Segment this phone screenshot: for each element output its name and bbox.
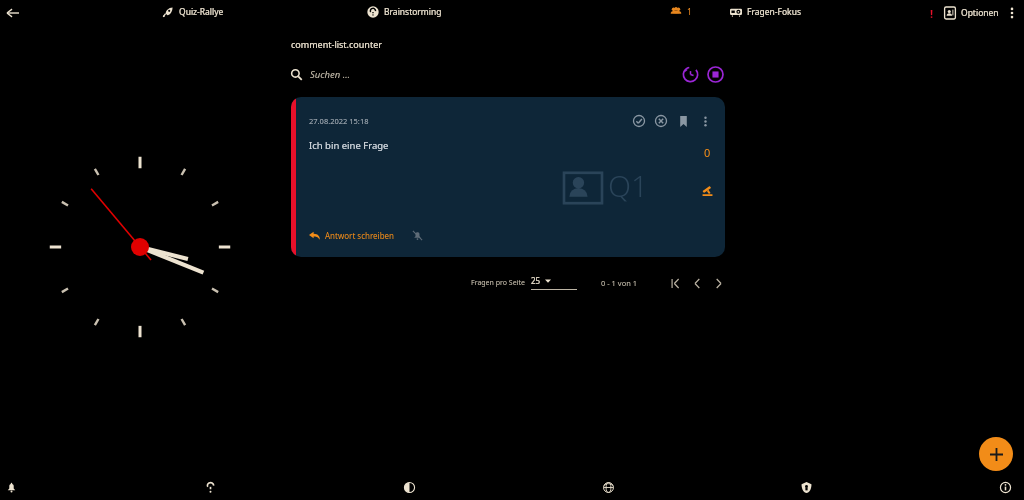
staticText: Suchen … [310,68,351,81]
button[interactable]: Q1 [291,97,725,257]
button[interactable]: Optionen [942,4,1001,22]
button[interactable]: Ablehnen [653,113,669,129]
button[interactable]: Benachrichtigungen [2,478,20,496]
button[interactable]: Erste [668,276,682,290]
staticText: ! [930,6,934,21]
staticText: Q1 [608,165,649,206]
staticText: Antwort schreiben [325,230,395,241]
button[interactable]: Mehr [1005,6,1019,20]
button[interactable]: Mehr [697,113,713,129]
button[interactable]: Datenschutz [797,478,815,496]
button[interactable]: Akzeptieren [631,113,647,129]
button[interactable]: Stopp [705,64,725,84]
button[interactable]: Fragen-Fokus [728,4,803,20]
button[interactable]: Bewerten [699,182,715,198]
button[interactable]: Benachrichtigung aus [409,227,425,243]
staticText: Brainstorming [384,6,442,18]
staticText: Fragen pro Seite [471,278,525,288]
staticText: 0 - 1 von 1 [601,278,638,288]
button[interactable]: Zurück [690,276,704,290]
staticText: Ich bin eine Frage [309,139,389,152]
staticText: Fragen-Fokus [747,6,801,18]
button[interactable]: Lesezeichen [675,113,691,129]
button[interactable]: Weiter [712,276,725,290]
staticText: 25 [531,275,541,286]
button[interactable]: Hinzufügen [979,437,1013,471]
staticText: comment-list.counter [291,38,382,50]
staticText: Quiz-Rallye [179,6,224,18]
button[interactable]: Zurück [4,4,22,22]
button[interactable]: Info [996,478,1014,496]
staticText: 1 [687,6,692,18]
button[interactable]: Suchen … [291,65,680,84]
button[interactable]: 1 [668,4,694,20]
staticText: 27.08.2022 15:18 [309,116,369,126]
button[interactable]: Antwort schreiben [307,228,397,243]
button[interactable]: Brainstorming [365,4,444,20]
staticText: 0 [704,145,711,160]
button[interactable]: Verlauf [680,64,700,84]
button[interactable]: 25 [531,275,577,290]
staticText: Optionen [961,7,999,19]
button[interactable]: Quiz-Rallye [160,4,226,20]
button[interactable]: Sprache [599,478,617,496]
button[interactable]: Hilfe [201,478,219,496]
button[interactable]: Kontrast [400,478,418,496]
